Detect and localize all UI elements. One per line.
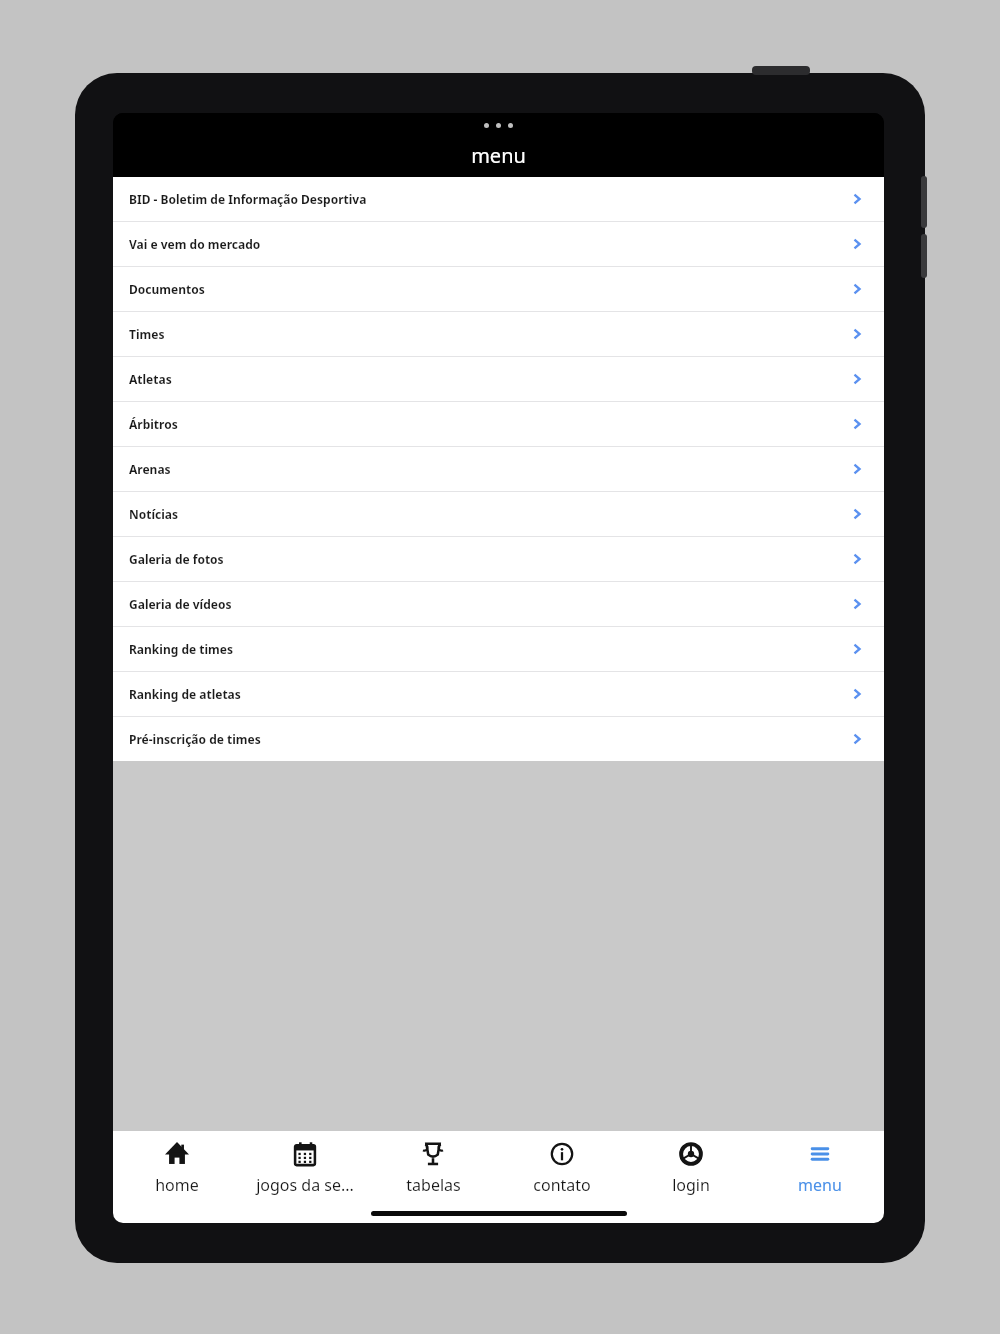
staticText: contato: [533, 1174, 591, 1196]
button[interactable]: Galeria de fotos: [113, 537, 884, 581]
staticText: Galeria de vídeos: [129, 596, 848, 612]
staticText: Times: [129, 326, 848, 342]
button[interactable]: Pré-inscrição de times: [113, 717, 884, 761]
button[interactable]: home: [113, 1131, 241, 1203]
button[interactable]: jogos da se...: [241, 1131, 369, 1203]
staticText: Pré-inscrição de times: [129, 731, 848, 747]
staticText: login: [672, 1174, 710, 1196]
staticText: tabelas: [406, 1174, 461, 1196]
staticText: Ranking de atletas: [129, 686, 848, 702]
button[interactable]: Vai e vem do mercado: [113, 222, 884, 266]
staticText: Arenas: [129, 461, 848, 477]
staticText: BID - Boletim de Informação Desportiva: [129, 191, 848, 207]
button[interactable]: Times: [113, 312, 884, 356]
button[interactable]: menu: [755, 1131, 884, 1203]
button[interactable]: Árbitros: [113, 402, 884, 446]
staticText: Ranking de times: [129, 641, 848, 657]
button[interactable]: Atletas: [113, 357, 884, 401]
button[interactable]: tabelas: [369, 1131, 497, 1203]
staticText: Atletas: [129, 371, 848, 387]
button[interactable]: Galeria de vídeos: [113, 582, 884, 626]
staticText: menu: [471, 142, 526, 169]
staticText: Árbitros: [129, 416, 848, 432]
button[interactable]: Documentos: [113, 267, 884, 311]
button[interactable]: login: [626, 1131, 755, 1203]
staticText: jogos da se...: [256, 1174, 354, 1196]
staticText: Documentos: [129, 281, 848, 297]
button[interactable]: BID - Boletim de Informação Desportiva: [113, 177, 884, 221]
button[interactable]: contato: [497, 1131, 626, 1203]
staticText: Notícias: [129, 506, 848, 522]
button[interactable]: Ranking de atletas: [113, 672, 884, 716]
staticText: home: [155, 1174, 199, 1196]
button[interactable]: Ranking de times: [113, 627, 884, 671]
staticText: Vai e vem do mercado: [129, 236, 848, 252]
button[interactable]: Notícias: [113, 492, 884, 536]
staticText: Galeria de fotos: [129, 551, 848, 567]
staticText: menu: [798, 1174, 842, 1196]
button[interactable]: Arenas: [113, 447, 884, 491]
